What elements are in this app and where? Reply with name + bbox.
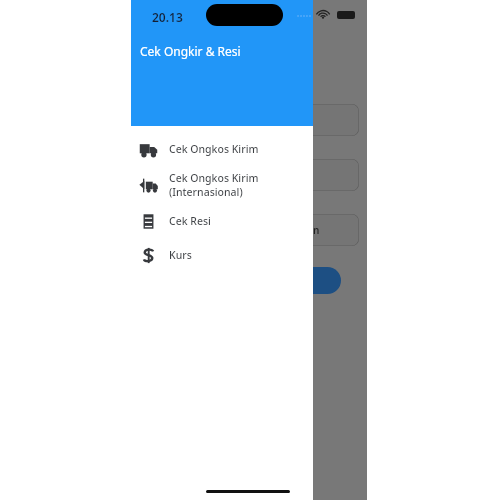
button[interactable] xyxy=(139,104,359,136)
other: International shipping xyxy=(139,176,158,195)
staticText: n xyxy=(313,223,320,237)
other: Receipt xyxy=(139,212,158,231)
button[interactable]: Receipt xyxy=(131,204,313,238)
button[interactable]: Currency rate xyxy=(131,238,313,272)
staticText: Cek Resi xyxy=(169,214,211,228)
staticText: Cek Ongkos Kirim xyxy=(169,171,259,185)
staticText: Cek Ongkir & Resi xyxy=(140,43,241,59)
button[interactable]: International shipping xyxy=(131,166,313,204)
staticText: 20.13 xyxy=(152,9,183,25)
staticText: Kurs xyxy=(169,248,192,262)
staticText: (Internasional) xyxy=(169,185,243,199)
button[interactable]: n xyxy=(139,214,359,246)
button[interactable] xyxy=(157,267,341,294)
button[interactable] xyxy=(139,159,359,191)
other: Truck xyxy=(139,140,158,159)
staticText: Cek Ongkos Kirim xyxy=(169,142,259,156)
button[interactable]: Truck xyxy=(131,132,313,166)
other: Currency rate xyxy=(139,246,158,265)
